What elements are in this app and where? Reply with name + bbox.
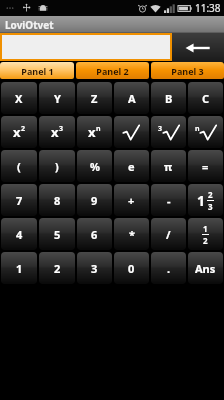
- button[interactable]: 9: [77, 184, 112, 216]
- staticText: x: [51, 123, 59, 141]
- staticText: 7: [16, 193, 23, 208]
- button[interactable]: (: [1, 150, 37, 182]
- staticText: 3: [91, 261, 98, 276]
- button[interactable]: 5: [39, 218, 75, 250]
- button[interactable]: Panel 1: [0, 62, 74, 79]
- staticText: 5: [54, 227, 61, 242]
- button[interactable]: x: [1, 116, 37, 148]
- staticText: x: [88, 123, 96, 141]
- button[interactable]: x: [77, 116, 112, 148]
- staticText: 9: [91, 193, 98, 208]
- staticText: 1: [16, 261, 23, 276]
- staticText: /: [166, 227, 171, 242]
- staticText: 1: [203, 223, 208, 234]
- staticText: B: [165, 91, 173, 106]
- staticText: 2: [203, 235, 208, 246]
- staticText: 4: [16, 227, 23, 242]
- staticText: 2: [208, 189, 213, 200]
- button[interactable]: -: [151, 184, 186, 216]
- staticText: Z: [91, 91, 98, 106]
- button[interactable]: %: [77, 150, 112, 182]
- staticText: Panel 2: [96, 65, 129, 77]
- staticText: n: [195, 124, 200, 134]
- button[interactable]: Panel 2: [76, 62, 149, 79]
- staticText: ): [55, 159, 59, 174]
- button[interactable]: 1: [188, 218, 223, 250]
- button[interactable]: 0: [114, 252, 149, 284]
- button[interactable]: Y: [39, 82, 75, 114]
- button[interactable]: /: [151, 218, 186, 250]
- button[interactable]: 2: [39, 252, 75, 284]
- staticText: =: [202, 159, 209, 174]
- button[interactable]: 4: [1, 218, 37, 250]
- staticText: -: [167, 193, 171, 208]
- button[interactable]: Ans: [188, 252, 223, 284]
- button[interactable]: 3: [151, 116, 186, 148]
- staticText: 6: [91, 227, 98, 242]
- staticText: .: [167, 261, 171, 276]
- staticText: A: [128, 91, 136, 106]
- staticText: x: [13, 123, 21, 141]
- staticText: 1: [197, 191, 206, 210]
- button[interactable]: X: [1, 82, 37, 114]
- button[interactable]: C: [188, 82, 223, 114]
- staticText: 2: [54, 261, 61, 276]
- button[interactable]: =: [188, 150, 223, 182]
- staticText: 8: [54, 193, 61, 208]
- button[interactable]: ): [39, 150, 75, 182]
- staticText: C: [202, 91, 210, 106]
- staticText: Panel 3: [171, 65, 204, 77]
- button[interactable]: 1: [188, 184, 223, 216]
- button[interactable]: e: [114, 150, 149, 182]
- staticText: 3: [158, 124, 163, 134]
- staticText: (: [17, 159, 21, 174]
- button[interactable]: 6: [77, 218, 112, 250]
- button[interactable]: n: [188, 116, 223, 148]
- staticText: LoviOtvet: [5, 18, 54, 32]
- button[interactable]: *: [114, 218, 149, 250]
- staticText: 3: [208, 201, 213, 212]
- staticText: X: [15, 91, 23, 106]
- staticText: 3: [59, 124, 64, 134]
- staticText: *: [129, 227, 135, 242]
- button[interactable]: Panel 3: [151, 62, 224, 79]
- staticText: %: [90, 159, 100, 174]
- button[interactable]: 7: [1, 184, 37, 216]
- button[interactable]: B: [151, 82, 186, 114]
- button[interactable]: [114, 116, 149, 148]
- button[interactable]: .: [151, 252, 186, 284]
- staticText: 11:38: [195, 1, 221, 15]
- button[interactable]: Backspace: [172, 33, 224, 62]
- button[interactable]: +: [114, 184, 149, 216]
- staticText: 2: [21, 124, 26, 134]
- button[interactable]: x: [39, 116, 75, 148]
- button[interactable]: π: [151, 150, 186, 182]
- staticText: Y: [54, 91, 61, 106]
- staticText: +: [128, 193, 135, 208]
- staticText: Ans: [195, 261, 216, 276]
- staticText: n: [96, 124, 101, 134]
- staticText: e: [128, 159, 135, 174]
- staticText: 0: [128, 261, 135, 276]
- button[interactable]: 1: [1, 252, 37, 284]
- button[interactable]: 3: [77, 252, 112, 284]
- button[interactable]: Z: [77, 82, 112, 114]
- button[interactable]: 8: [39, 184, 75, 216]
- staticText: Panel 1: [21, 65, 54, 77]
- staticText: π: [164, 159, 173, 174]
- button[interactable]: A: [114, 82, 149, 114]
